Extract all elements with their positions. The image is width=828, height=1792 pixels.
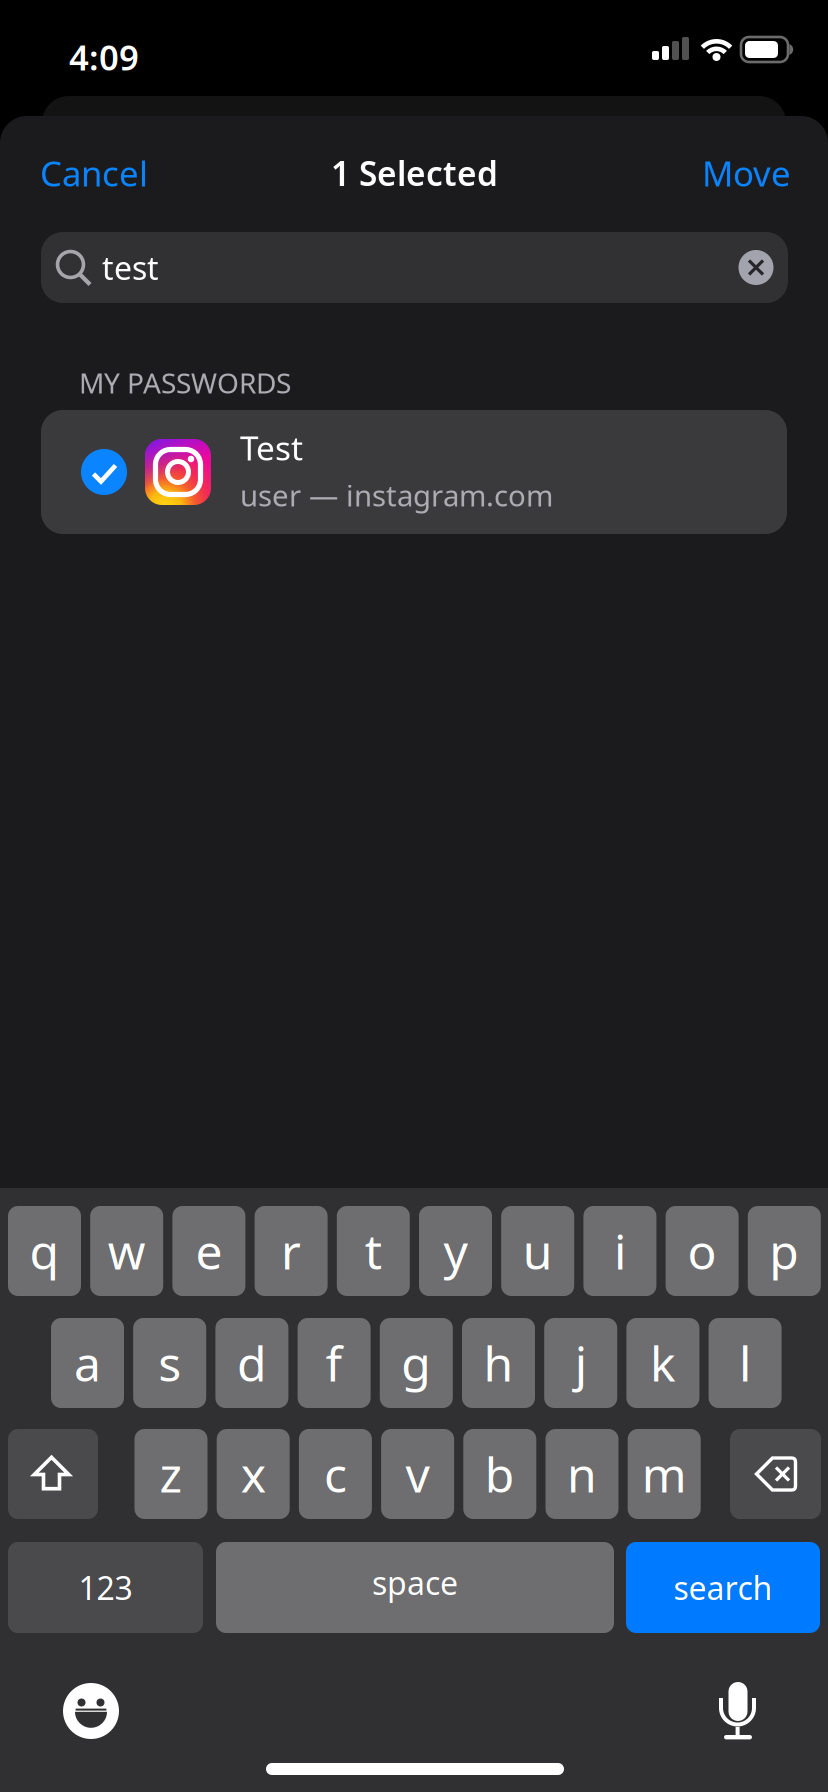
staticText: g: [401, 1331, 431, 1395]
button[interactable]: o: [666, 1206, 739, 1296]
button[interactable]: 123: [8, 1542, 203, 1633]
staticText: MY PASSWORDS: [79, 364, 291, 401]
button[interactable]: f: [298, 1318, 371, 1408]
staticText: a: [74, 1331, 101, 1395]
button[interactable]: h: [462, 1318, 535, 1408]
staticText: p: [769, 1219, 799, 1283]
button[interactable]: n: [545, 1429, 618, 1519]
button[interactable]: d: [215, 1318, 288, 1408]
button[interactable]: a: [51, 1318, 124, 1408]
staticText: b: [485, 1442, 515, 1506]
button[interactable]: k: [626, 1318, 699, 1408]
staticText: l: [739, 1331, 751, 1395]
button[interactable]: space: [216, 1542, 614, 1633]
button[interactable]: j: [544, 1318, 617, 1408]
staticText: s: [158, 1331, 181, 1395]
button[interactable]: v: [381, 1429, 454, 1519]
button[interactable]: y: [419, 1206, 492, 1296]
staticText: k: [650, 1331, 676, 1395]
button[interactable]: l: [709, 1318, 782, 1408]
button[interactable]: search: [626, 1542, 820, 1633]
staticText: i: [614, 1219, 626, 1283]
staticText: m: [642, 1442, 687, 1506]
staticText: u: [523, 1219, 553, 1283]
staticText: 1 Selected: [331, 151, 498, 195]
staticText: j: [575, 1331, 587, 1395]
button[interactable]: Shift: [8, 1429, 98, 1519]
staticText: 123: [78, 1566, 132, 1609]
staticText: Cancel: [40, 150, 148, 196]
staticText: Test: [240, 425, 303, 470]
button[interactable]: s: [133, 1318, 206, 1408]
staticText: Move: [702, 150, 791, 196]
button[interactable]: Move: [699, 144, 788, 202]
staticText: t: [365, 1219, 382, 1283]
button[interactable]: x: [217, 1429, 290, 1519]
staticText: n: [567, 1442, 597, 1506]
staticText: o: [688, 1219, 717, 1283]
button[interactable]: u: [501, 1206, 574, 1296]
staticText: v: [406, 1442, 430, 1506]
button[interactable]: z: [134, 1429, 207, 1519]
staticText: search: [673, 1566, 772, 1609]
button[interactable]: q: [8, 1206, 81, 1296]
button[interactable]: Clear text: [725, 236, 787, 298]
button[interactable]: Cancel: [40, 144, 148, 202]
button[interactable]: Test: [41, 410, 787, 534]
button[interactable]: e: [172, 1206, 245, 1296]
button[interactable]: Emoji keyboard: [51, 1671, 131, 1751]
staticText: q: [29, 1219, 59, 1283]
staticText: h: [483, 1331, 513, 1395]
button[interactable]: r: [255, 1206, 328, 1296]
staticText: c: [324, 1442, 347, 1506]
button[interactable]: c: [299, 1429, 372, 1519]
button[interactable]: Dictation: [698, 1671, 778, 1751]
staticText: x: [241, 1442, 266, 1506]
staticText: d: [237, 1331, 267, 1395]
staticText: r: [281, 1219, 301, 1283]
button[interactable]: i: [583, 1206, 656, 1296]
staticText: 4:09: [69, 34, 139, 80]
staticText: z: [159, 1442, 182, 1506]
button[interactable]: w: [90, 1206, 163, 1296]
button[interactable]: Delete: [730, 1429, 821, 1519]
staticText: f: [326, 1331, 343, 1395]
staticText: e: [195, 1219, 222, 1283]
staticText: y: [443, 1219, 467, 1283]
button[interactable]: g: [380, 1318, 453, 1408]
button[interactable]: t: [337, 1206, 410, 1296]
staticText: w: [108, 1219, 146, 1283]
button[interactable]: m: [628, 1429, 701, 1519]
staticText: space: [372, 1561, 458, 1604]
staticText: user — instagram.com: [240, 476, 553, 515]
button[interactable]: b: [463, 1429, 536, 1519]
staticText: test: [102, 246, 159, 289]
button[interactable]: p: [748, 1206, 821, 1296]
